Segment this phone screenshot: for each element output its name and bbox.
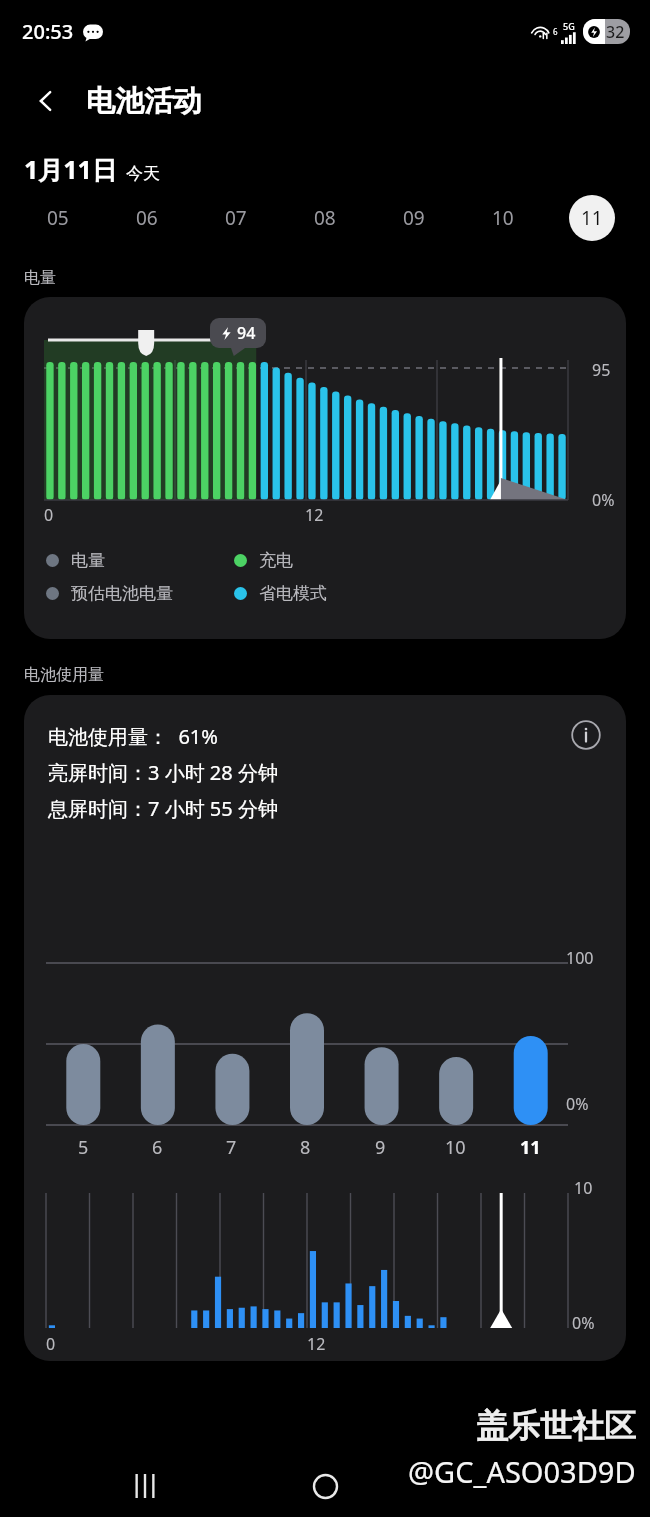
button[interactable]: Back: [20, 75, 72, 127]
staticText: 12: [307, 1333, 326, 1355]
staticText: 08: [314, 205, 336, 231]
staticText: 电池使用量： 61%: [48, 723, 218, 750]
button[interactable]: 08: [280, 190, 369, 246]
staticText: 8: [300, 1135, 311, 1160]
staticText: 充电: [259, 550, 293, 571]
staticText: 11: [581, 205, 603, 231]
staticText: 0%: [566, 1093, 589, 1115]
staticText: 电池使用量: [24, 665, 104, 685]
button[interactable]: Recents: [117, 1458, 173, 1514]
staticText: 1月11日: [24, 152, 117, 186]
staticText: 06: [136, 205, 158, 231]
staticText: 电量: [71, 550, 105, 571]
staticText: 今天: [126, 163, 160, 184]
staticText: 0%: [592, 489, 615, 511]
staticText: 盖乐世社区: [476, 1406, 636, 1446]
staticText: 5G: [563, 20, 575, 32]
button[interactable]: Info: [564, 713, 608, 757]
staticText: 11: [520, 1135, 541, 1160]
staticText: 0%: [572, 1312, 595, 1334]
button[interactable]: 09: [369, 190, 458, 246]
staticText: 12: [305, 504, 324, 526]
staticText: @GC_ASO03D9D: [408, 1452, 636, 1491]
staticText: 7: [226, 1135, 237, 1160]
staticText: 亮屏时间：3 小时 28 分钟: [48, 759, 278, 786]
button[interactable]: 07: [191, 190, 280, 246]
staticText: 6: [152, 1135, 163, 1160]
staticText: 10: [574, 1177, 593, 1199]
staticText: 0: [44, 504, 54, 526]
staticText: 息屏时间：7 小时 55 分钟: [48, 795, 278, 822]
staticText: 电量: [24, 268, 56, 288]
staticText: 09: [403, 205, 425, 231]
button[interactable]: 06: [102, 190, 191, 246]
staticText: 5: [78, 1135, 89, 1160]
button[interactable]: 10: [458, 190, 547, 246]
staticText: 32: [606, 21, 625, 43]
staticText: 0: [46, 1333, 56, 1355]
button[interactable]: 11: [547, 190, 636, 246]
staticText: 预估电池电量: [71, 583, 173, 604]
staticText: 省电模式: [259, 583, 327, 604]
staticText: 电池活动: [86, 83, 202, 120]
staticText: 100: [566, 947, 594, 969]
staticText: 07: [225, 205, 247, 231]
staticText: 10: [492, 205, 514, 231]
staticText: 9: [375, 1135, 386, 1160]
staticText: 05: [47, 205, 69, 231]
staticText: 6: [553, 26, 558, 37]
staticText: 20:53: [22, 18, 74, 45]
button[interactable]: Home: [297, 1458, 353, 1514]
button[interactable]: 电池使用量： 61%: [24, 695, 626, 1361]
staticText: 10: [445, 1135, 466, 1160]
staticText: 95: [592, 359, 611, 381]
button[interactable]: 94: [24, 297, 626, 639]
staticText: 94: [237, 322, 256, 344]
button[interactable]: 05: [14, 190, 102, 246]
